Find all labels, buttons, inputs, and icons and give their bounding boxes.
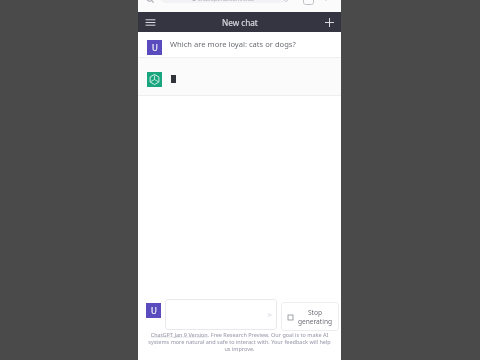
button[interactable]: Address bar	[160, 0, 286, 3]
staticText: U	[151, 305, 157, 316]
button[interactable]	[138, 58, 341, 95]
button[interactable]: Message input	[165, 299, 277, 330]
staticText: U	[152, 42, 158, 53]
staticText: Stop generating	[295, 308, 335, 326]
button[interactable]: Expand	[282, 0, 290, 4]
button[interactable]: Search	[146, 0, 154, 3]
button[interactable]: Tabs	[303, 0, 314, 5]
staticText: chat.openai.com/chat	[198, 0, 255, 2]
button[interactable]: New chat	[320, 13, 338, 31]
button[interactable]: U	[138, 32, 341, 57]
button[interactable]: Menu	[141, 13, 159, 31]
staticText: New chat	[222, 17, 258, 28]
button[interactable]: Stop generating	[281, 302, 339, 331]
staticText: ChatGPT Jan 9 Version. Free Research Pre…	[146, 331, 333, 352]
staticText: Which are more loyal: cats or dogs?	[170, 39, 296, 49]
